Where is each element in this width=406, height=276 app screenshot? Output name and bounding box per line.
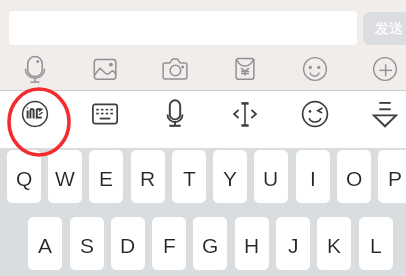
button[interactable]: Emoji xyxy=(281,45,349,93)
staticText: F xyxy=(163,234,176,257)
staticText: U xyxy=(263,167,279,190)
button[interactable]: Photos xyxy=(71,45,139,93)
staticText: K xyxy=(327,234,342,257)
button[interactable]: O xyxy=(337,150,371,203)
staticText: 发送 xyxy=(375,20,403,38)
button[interactable]: A xyxy=(28,217,62,270)
button[interactable]: J xyxy=(276,217,310,270)
button[interactable]: G xyxy=(193,217,227,270)
staticText: J xyxy=(288,234,299,257)
button[interactable]: More xyxy=(351,45,406,93)
staticText: G xyxy=(202,234,219,257)
button[interactable]: Keyboard layout xyxy=(71,90,139,138)
staticText: T xyxy=(183,167,196,190)
button[interactable]: Hide keyboard xyxy=(351,90,406,138)
button[interactable]: Red packet xyxy=(211,45,279,93)
button[interactable]: P xyxy=(378,150,406,203)
staticText: R xyxy=(140,167,156,190)
button[interactable]: R xyxy=(131,150,165,203)
button[interactable]: E xyxy=(89,150,123,203)
button[interactable]: H xyxy=(235,217,269,270)
staticText: Q xyxy=(16,167,33,190)
button[interactable]: Voice message xyxy=(1,45,69,93)
button[interactable]: Voice input xyxy=(141,90,209,138)
button[interactable]: Input method xyxy=(1,90,69,138)
staticText: I xyxy=(310,167,316,190)
button[interactable]: S xyxy=(70,217,104,270)
button[interactable]: T xyxy=(172,150,206,203)
staticText: W xyxy=(55,167,75,190)
button[interactable]: Y xyxy=(213,150,247,203)
staticText: D xyxy=(120,234,136,257)
button[interactable]: K xyxy=(317,217,351,270)
button[interactable]: I xyxy=(296,150,330,203)
staticText: S xyxy=(80,234,95,257)
staticText: P xyxy=(388,167,403,190)
button[interactable]: U xyxy=(254,150,288,203)
button[interactable]: F xyxy=(152,217,186,270)
button[interactable]: Camera xyxy=(141,45,209,93)
button[interactable]: Emoticons xyxy=(281,90,349,138)
button[interactable]: Q xyxy=(7,150,41,203)
staticText: O xyxy=(346,167,363,190)
staticText: L xyxy=(370,234,382,257)
staticText: Y xyxy=(223,167,238,190)
button[interactable]: D xyxy=(111,217,145,270)
button[interactable]: L xyxy=(359,217,393,270)
button[interactable]: Move cursor xyxy=(211,90,279,138)
staticText: A xyxy=(38,234,53,257)
staticText: E xyxy=(99,167,114,190)
button[interactable]: 发送 xyxy=(363,12,406,45)
button[interactable]: W xyxy=(48,150,82,203)
staticText: H xyxy=(244,234,260,257)
